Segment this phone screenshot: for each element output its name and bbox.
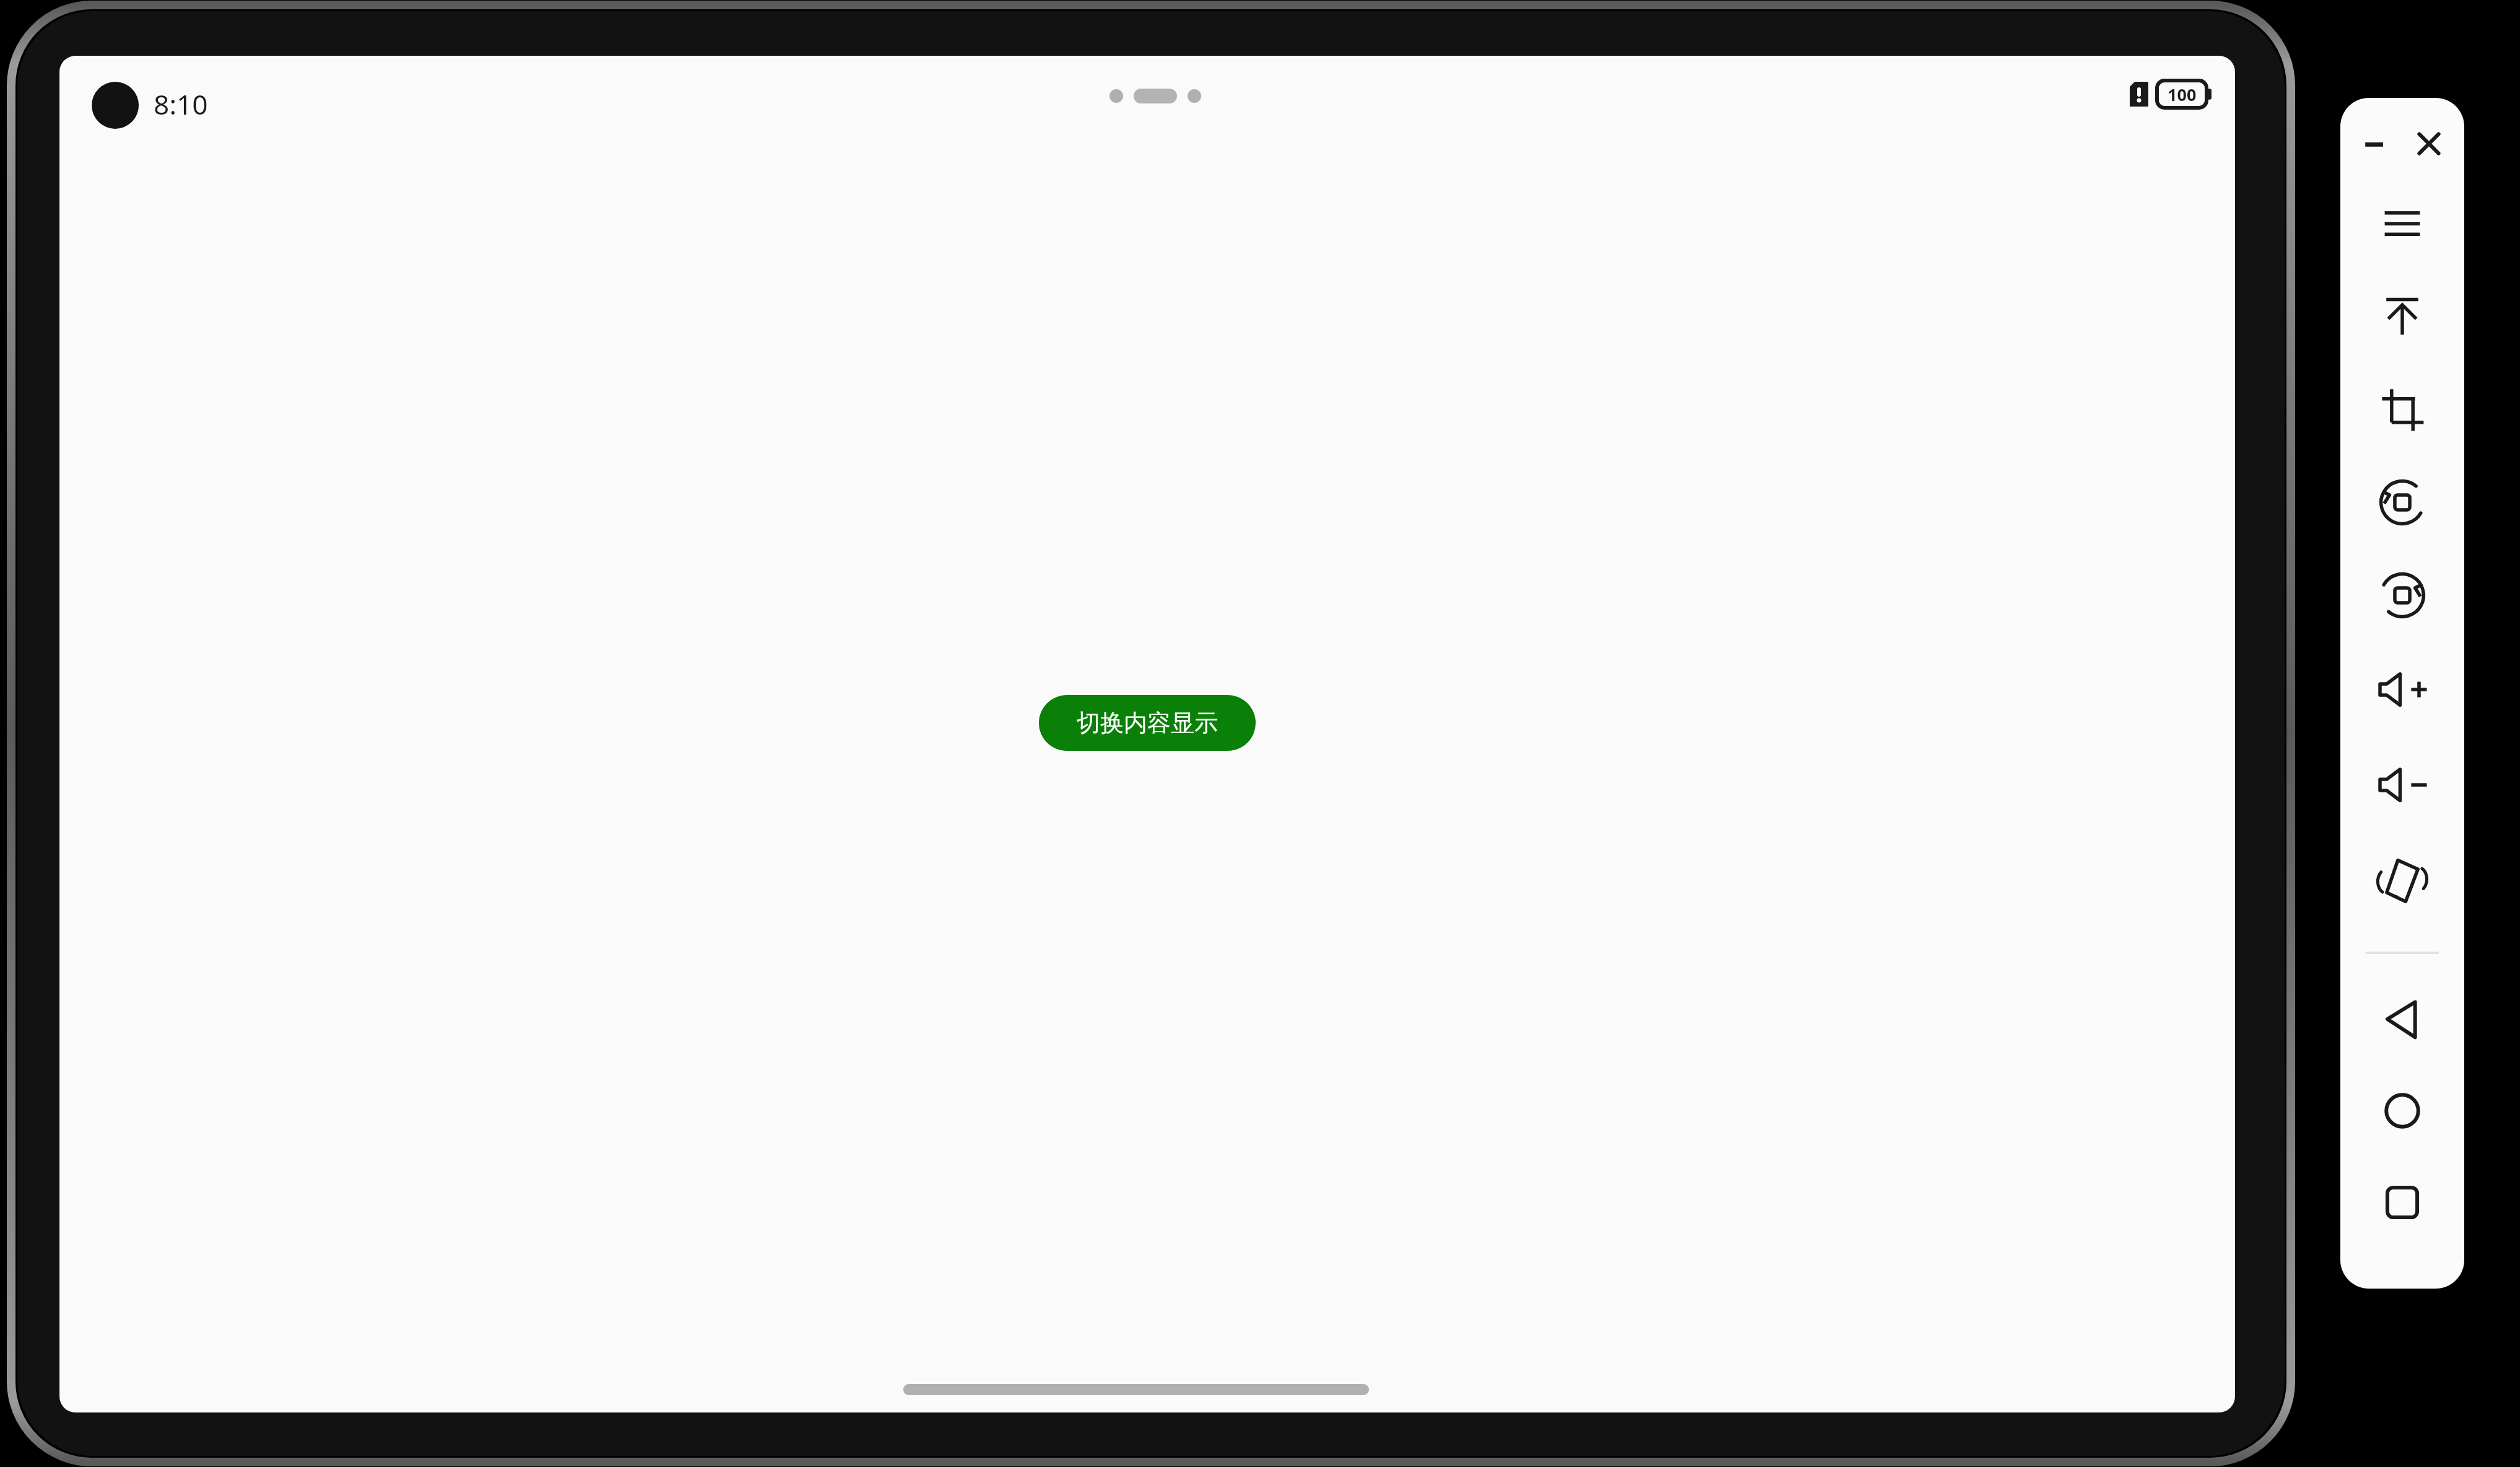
staticText: 100	[2168, 83, 2197, 106]
button[interactable]: Minimize	[2357, 125, 2394, 162]
button[interactable]: Rotate device	[2374, 852, 2430, 908]
staticText: 切换内容显示	[1077, 708, 1218, 738]
button[interactable]: Back	[2376, 992, 2429, 1046]
button[interactable]: Upload	[2376, 290, 2429, 343]
button[interactable]: Recent apps	[2376, 1176, 2429, 1229]
button[interactable]: Menu	[2376, 197, 2429, 250]
button[interactable]: Close	[2410, 125, 2448, 162]
button[interactable]: 切换内容显示	[1039, 695, 1256, 751]
button[interactable]: Rotate left	[2376, 476, 2429, 529]
button[interactable]: Home	[2376, 1084, 2429, 1137]
button[interactable]: Rotate right	[2376, 569, 2429, 622]
button[interactable]: Volume down	[2374, 757, 2430, 813]
staticText: 8:10	[154, 85, 208, 123]
button[interactable]: Crop	[2376, 383, 2429, 436]
button[interactable]: Volume up	[2374, 662, 2430, 717]
